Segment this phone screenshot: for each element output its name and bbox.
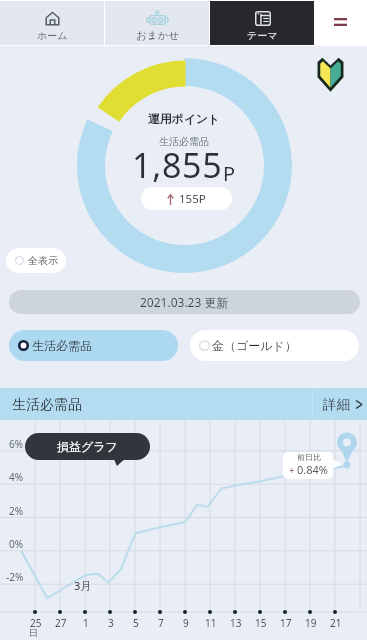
- staticText: 運用ポイント: [148, 112, 220, 127]
- staticText: 生活必需品: [159, 135, 209, 148]
- staticText: 27: [55, 616, 67, 630]
- staticText: 生活必需品: [12, 396, 82, 414]
- staticText: 詳細: [323, 396, 350, 413]
- button[interactable]: 金（ゴールド）: [190, 330, 359, 361]
- staticText: 17: [280, 616, 292, 630]
- staticText: 1: [83, 616, 89, 630]
- button[interactable]: 生活必需品: [9, 330, 178, 361]
- staticText: 3月: [74, 578, 92, 593]
- button[interactable]: 全表示: [6, 248, 66, 273]
- staticText: 0.84%: [297, 462, 328, 477]
- staticText: 4%: [9, 470, 24, 484]
- staticText: 25: [30, 616, 42, 630]
- staticText: 9: [183, 616, 189, 630]
- staticText: 2%: [9, 504, 24, 518]
- button[interactable]: Menu: [314, 0, 367, 46]
- staticText: 3: [108, 616, 114, 630]
- button[interactable]: テーマ: [210, 1, 314, 45]
- staticText: 7: [158, 616, 164, 630]
- staticText: 1,855: [132, 142, 223, 188]
- staticText: おまかせ: [136, 29, 179, 42]
- staticText: 6%: [9, 437, 24, 451]
- button[interactable]: 2021.03.23 更新: [9, 290, 360, 314]
- staticText: ホーム: [37, 29, 68, 42]
- button[interactable]: 損益グラフ: [25, 433, 150, 460]
- staticText: テーマ: [247, 29, 278, 42]
- staticText: P: [223, 160, 236, 187]
- staticText: 前日比: [297, 452, 321, 462]
- button[interactable]: 詳細: [313, 388, 367, 420]
- staticText: +: [289, 463, 295, 477]
- other: Beginner: [317, 57, 344, 92]
- staticText: 損益グラフ: [57, 439, 118, 454]
- button[interactable]: 155P: [141, 187, 232, 210]
- staticText: 日: [29, 627, 38, 638]
- staticText: 5: [133, 616, 139, 630]
- staticText: 21: [330, 616, 342, 630]
- staticText: 生活必需品: [32, 338, 92, 353]
- staticText: 金（ゴールド）: [212, 338, 297, 353]
- staticText: 11: [205, 616, 217, 630]
- staticText: 13: [230, 616, 242, 630]
- staticText: 全表示: [28, 254, 58, 267]
- staticText: 19: [305, 616, 317, 630]
- staticText: 155P: [179, 191, 206, 207]
- staticText: 2021.03.23 更新: [140, 294, 229, 310]
- button[interactable]: おまかせ: [105, 1, 209, 45]
- staticText: 0%: [9, 537, 24, 551]
- staticText: -2%: [6, 570, 24, 584]
- staticText: 15: [255, 616, 267, 630]
- button[interactable]: ホーム: [0, 1, 104, 45]
